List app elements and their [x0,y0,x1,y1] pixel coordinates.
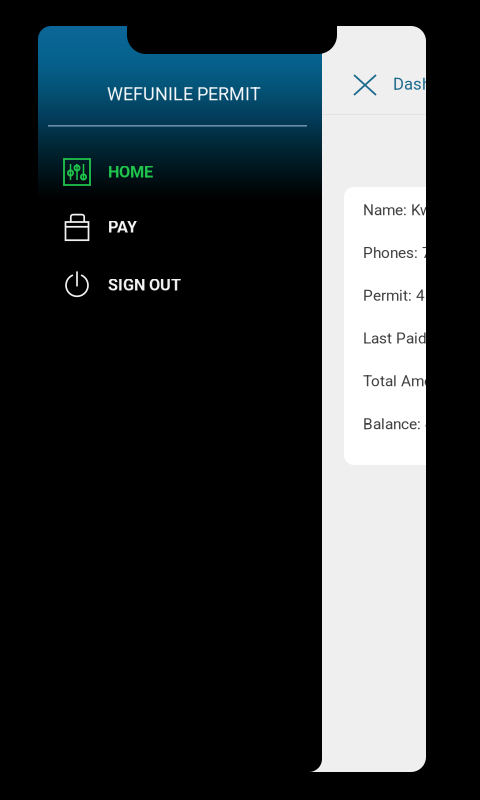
staticText: Total Amount: 1200 [363,372,480,390]
staticText: HOME [108,162,153,182]
button[interactable]: Dashboard [298,26,426,88]
staticText: WEFUNILE PERMIT [107,83,261,105]
staticText: Phones: 712345678 [363,244,480,262]
staticText: Name: Kwame Mensah [363,201,480,219]
button[interactable]: HOME [38,147,322,197]
button[interactable]: PAY [38,202,322,252]
staticText: PAY [108,217,137,237]
button[interactable]: SIGN OUT [38,260,322,310]
staticText: Balance: 450 [363,415,452,433]
staticText: Last Paid: 12/08/2023 [363,329,480,347]
staticText: Permit: 4600122 [363,286,479,304]
staticText: SIGN OUT [108,275,181,295]
staticText: Dashboard [393,74,473,94]
